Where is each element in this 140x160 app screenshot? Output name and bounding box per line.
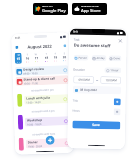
button[interactable]: S bbox=[60, 51, 68, 62]
staticText: Duration bbox=[73, 68, 85, 72]
staticText: T bbox=[27, 53, 29, 57]
staticText: Save bbox=[92, 123, 100, 127]
button[interactable]: Save bbox=[72, 121, 120, 129]
staticText: Done bbox=[113, 56, 121, 60]
staticText: 09:00 - 10:00 bbox=[23, 71, 38, 75]
button[interactable]: All day bbox=[91, 55, 107, 61]
button[interactable]: 08 Aug 2022 bbox=[73, 86, 121, 94]
button[interactable]: Person bbox=[73, 55, 89, 61]
staticText: All day bbox=[96, 56, 106, 60]
staticText: no events until 1 pm bbox=[31, 88, 54, 91]
button[interactable]: Download on the App Store bbox=[72, 3, 107, 15]
button[interactable]: T bbox=[24, 52, 31, 64]
button[interactable]: Design review bbox=[15, 65, 68, 76]
staticText: 19:00 - 20:00 bbox=[28, 144, 43, 147]
button[interactable]: Add event bbox=[45, 136, 55, 145]
button[interactable]: Get it on Google Play bbox=[33, 3, 68, 15]
button[interactable]: Menu bbox=[15, 46, 18, 49]
staticText: 17 bbox=[35, 56, 39, 60]
staticText: GET IT ON bbox=[42, 5, 53, 8]
staticText: S bbox=[64, 52, 66, 55]
staticText: Google Play bbox=[42, 8, 66, 14]
button[interactable] bbox=[18, 138, 24, 151]
button[interactable]: F bbox=[51, 51, 59, 63]
staticText: App Store bbox=[81, 8, 101, 14]
button[interactable]: Add title bbox=[114, 98, 121, 105]
button[interactable]: Stand-up & client call bbox=[15, 75, 69, 86]
staticText: 10:30 - 11:00 bbox=[24, 81, 39, 85]
staticText: Task bbox=[74, 38, 80, 42]
button[interactable]: Workshop bbox=[25, 116, 70, 127]
staticText: August 2022 bbox=[27, 44, 52, 49]
staticText: 18 bbox=[45, 56, 49, 60]
staticText: no events until 4 pm bbox=[31, 109, 55, 112]
button[interactable]: M bbox=[15, 53, 22, 64]
staticText: 09:00AM bbox=[78, 78, 90, 82]
button[interactable]: 10:00AM bbox=[100, 76, 121, 84]
staticText: Do awesome stuff bbox=[74, 43, 111, 49]
staticText: 9:41 bbox=[15, 36, 21, 40]
button[interactable]: T bbox=[43, 52, 50, 63]
staticText: Design review bbox=[23, 67, 44, 72]
staticText: 1 hour bbox=[110, 68, 119, 72]
button[interactable]: Close bbox=[118, 38, 122, 42]
staticText: Dinner bbox=[28, 140, 39, 145]
staticText: 19 bbox=[54, 55, 58, 59]
staticText: 15 bbox=[17, 57, 21, 61]
staticText: Stand-up & client call bbox=[23, 76, 55, 82]
button[interactable]: Dinner bbox=[26, 138, 71, 149]
staticText: 9:41 bbox=[73, 30, 79, 34]
staticText: 08 Aug 2022 bbox=[80, 88, 97, 92]
button[interactable]: Lunch with Julia bbox=[24, 94, 69, 105]
staticText: 16 bbox=[26, 56, 30, 60]
staticText: Download on the bbox=[81, 5, 99, 8]
staticText: T bbox=[46, 53, 48, 56]
staticText: 20 bbox=[63, 55, 67, 59]
button[interactable]: W bbox=[33, 52, 40, 63]
staticText: Workshop bbox=[27, 118, 43, 123]
button[interactable]: 09:00AM bbox=[73, 76, 94, 84]
staticText: F bbox=[55, 52, 57, 56]
staticText: Title bbox=[73, 99, 79, 103]
staticText: Person bbox=[78, 56, 88, 60]
button[interactable] bbox=[17, 94, 22, 107]
staticText: Lunch with Julia bbox=[26, 96, 50, 100]
button[interactable]: Profile bbox=[63, 44, 66, 47]
button[interactable]: 1 hour bbox=[104, 67, 121, 73]
staticText: Notes bbox=[73, 109, 81, 113]
button[interactable] bbox=[18, 115, 23, 130]
staticText: M bbox=[18, 54, 20, 57]
staticText: 10:00AM bbox=[105, 78, 117, 82]
staticText: 13:00 - 14:00 bbox=[26, 100, 41, 103]
staticText: W bbox=[35, 53, 38, 56]
staticText: no events until 7 pm bbox=[32, 132, 55, 135]
button[interactable]: Done bbox=[108, 55, 122, 61]
staticText: 16:00 - 18:00 bbox=[27, 122, 42, 125]
button[interactable]: Add note bbox=[113, 108, 121, 115]
